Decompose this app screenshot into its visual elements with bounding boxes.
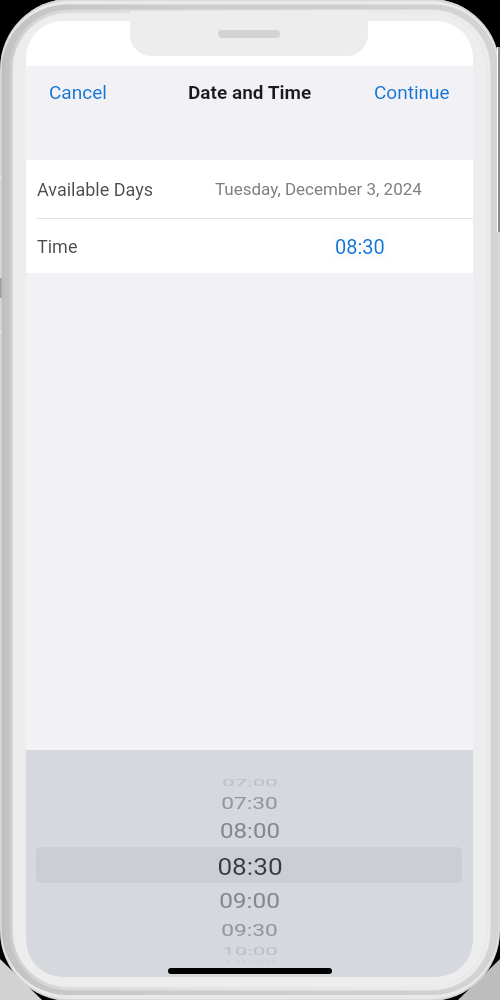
staticText: Tuesday, December 3, 2024	[215, 179, 422, 199]
button[interactable]: 08:30	[331, 232, 389, 261]
staticText: Time	[37, 236, 78, 257]
staticText: Available Days	[37, 179, 153, 200]
button[interactable]: Cancel	[39, 73, 117, 111]
button[interactable]: Available Days	[26, 160, 473, 218]
staticText: 10:00	[222, 944, 278, 958]
staticText: Date and Time	[188, 81, 312, 103]
button[interactable]: Time	[26, 219, 473, 273]
other: Home indicator	[168, 968, 332, 974]
staticText: 08:00	[220, 821, 280, 843]
staticText: Continue	[374, 81, 450, 103]
staticText: 08:30	[217, 854, 283, 881]
staticText: 07:00	[222, 776, 278, 788]
staticText: 07:30	[221, 794, 278, 813]
staticText: 09:30	[221, 921, 278, 940]
staticText: Cancel	[49, 81, 107, 103]
staticText: 09:00	[219, 888, 280, 913]
button[interactable]: Continue	[364, 73, 460, 111]
staticText: 08:30	[335, 235, 385, 258]
